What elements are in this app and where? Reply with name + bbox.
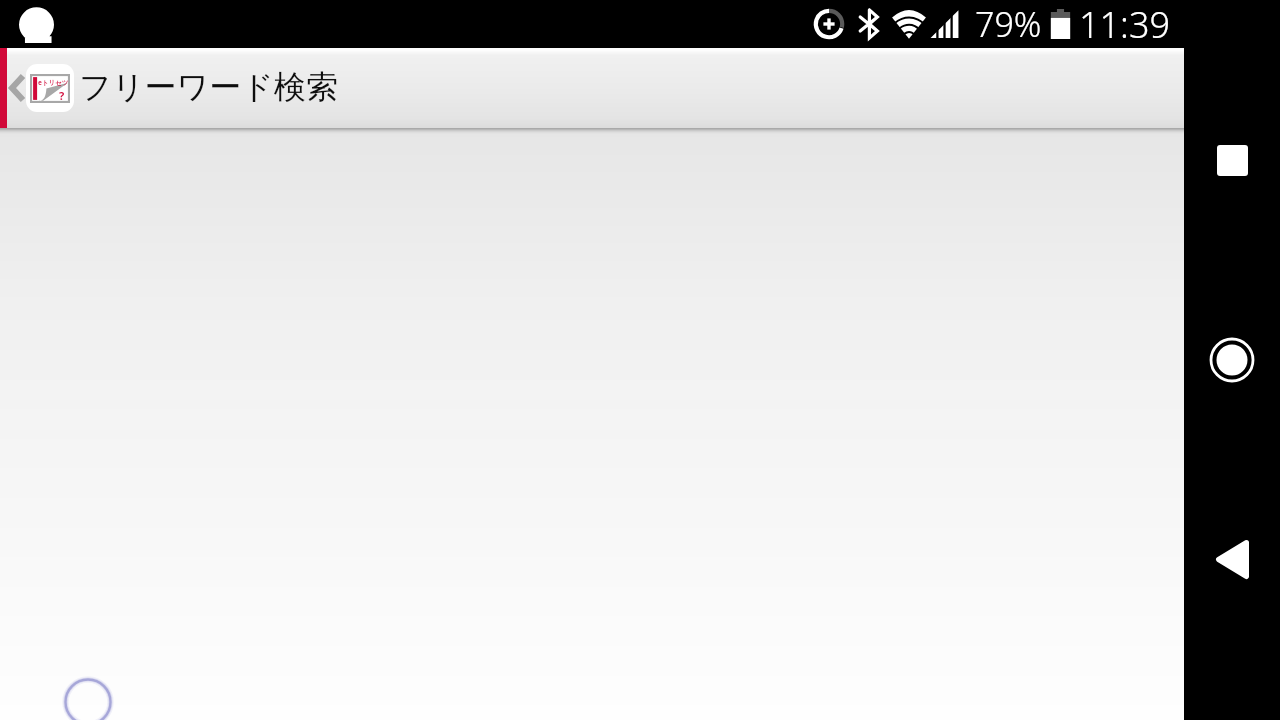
- button[interactable]: Navigate up: [0, 48, 74, 128]
- button[interactable]: Home: [1200, 328, 1264, 392]
- staticText: フリーワード検索: [79, 67, 338, 107]
- button[interactable]: Back: [1200, 527, 1264, 591]
- staticText: 11:39: [1079, 0, 1171, 48]
- staticText: ?: [59, 88, 65, 103]
- staticText: eトリセツ: [38, 78, 69, 87]
- button[interactable]: Recent apps: [1200, 128, 1264, 192]
- staticText: 79%: [975, 1, 1042, 47]
